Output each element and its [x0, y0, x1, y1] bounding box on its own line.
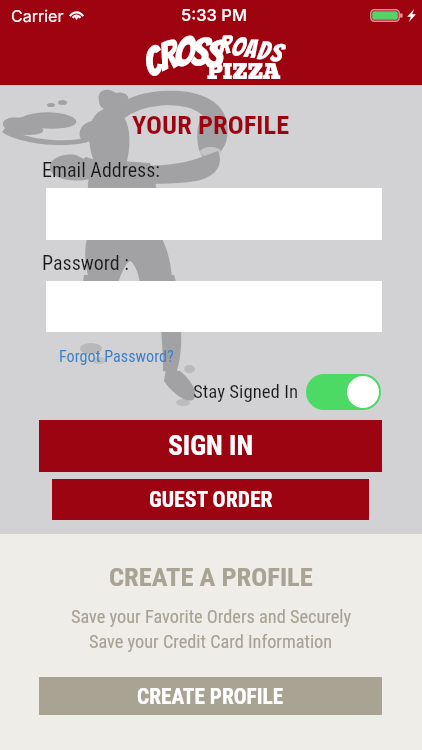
staticText: Forgot Password? [59, 347, 174, 366]
button[interactable]: SIGN IN [39, 420, 382, 472]
staticText: A [243, 34, 259, 64]
staticText: CREATE PROFILE [137, 684, 284, 709]
staticText: O [172, 30, 195, 75]
staticText: S [203, 32, 227, 77]
staticText: CREATE A PROFILE [109, 561, 313, 592]
staticText: O [231, 32, 246, 62]
staticText: PIZZA [207, 56, 281, 88]
button[interactable]: Stay Signed In toggle [306, 374, 381, 410]
staticText: D [256, 36, 272, 66]
staticText: GUEST ORDER [149, 487, 273, 512]
staticText: S [190, 31, 210, 74]
staticText: S [268, 38, 286, 68]
staticText: Stay Signed In [193, 381, 299, 403]
staticText: SIGN IN [168, 430, 254, 462]
staticText: Save your Credit Card Information [89, 631, 333, 652]
button[interactable]: CREATE PROFILE [39, 677, 382, 715]
staticText: C [137, 39, 168, 86]
staticText: R [218, 31, 232, 59]
staticText: R [155, 34, 181, 79]
button[interactable]: GUEST ORDER [52, 479, 369, 520]
button[interactable]: Forgot Password? [59, 347, 174, 366]
staticText: Email Address: [42, 158, 160, 181]
staticText: YOUR PROFILE [132, 109, 290, 140]
staticText: 5:33 PM [181, 5, 247, 25]
staticText: Carrier [11, 6, 64, 25]
staticText: Password : [42, 251, 129, 274]
staticText: Save your Favorite Orders and Securely [71, 606, 352, 627]
